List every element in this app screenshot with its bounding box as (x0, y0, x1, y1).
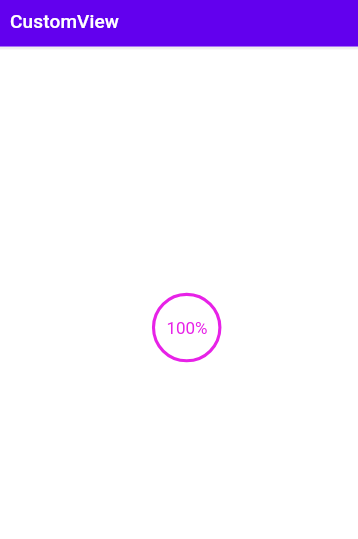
staticText: 100% (166, 318, 208, 338)
staticText: CustomView (10, 10, 120, 32)
button[interactable]: Progress 100 percent (152, 293, 221, 362)
button[interactable]: CustomView (0, 0, 358, 47)
